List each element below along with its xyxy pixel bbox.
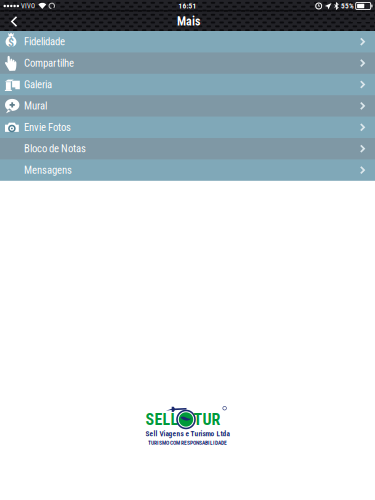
staticText: Mais [177,14,200,29]
staticText: TUR [193,410,220,429]
button[interactable]: Galeria [0,74,375,95]
staticText: Bloco de Notas [24,142,86,155]
button[interactable]: Compartilhe [0,52,375,74]
button[interactable]: Bloco de Notas [0,138,375,159]
staticText: Mural [24,100,47,112]
staticText: SELL [145,410,178,429]
staticText: 55% [341,2,354,10]
button[interactable]: Back [2,12,26,31]
staticText: Compartilhe [24,57,74,69]
staticText: 16:51 [178,2,196,10]
staticText: Envie Fotos [24,121,71,133]
button[interactable]: Mural [0,95,375,117]
staticText: Mensagens [24,164,72,176]
staticText: TURISMO COM RESPONSABILIDADE [148,439,227,446]
staticText: Galeria [24,78,52,91]
staticText: $ [8,36,14,50]
staticText: VIVO [21,2,35,10]
button[interactable]: Mensagens [0,159,375,181]
staticText: Sell Viagens e Turismo Ltda [145,429,229,438]
button[interactable]: Envie Fotos [0,117,375,138]
button[interactable]: $ [0,31,375,52]
staticText: Fidelidade [24,35,65,48]
